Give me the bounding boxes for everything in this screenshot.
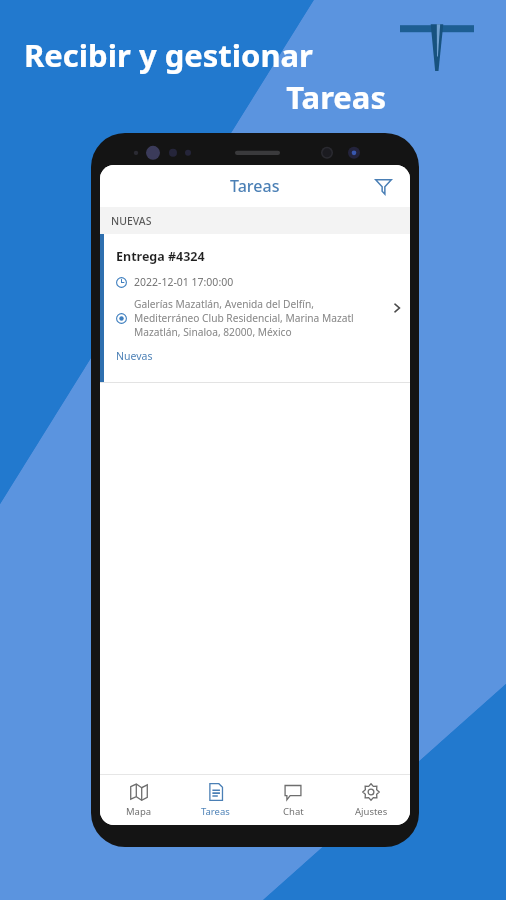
staticText: Chat	[283, 805, 304, 818]
staticText: Nuevas	[116, 349, 153, 363]
button[interactable]: Filtrar	[366, 169, 400, 203]
button[interactable]: Chat	[254, 775, 332, 825]
staticText: Ajustes	[355, 805, 388, 818]
other: Logo	[400, 20, 474, 72]
staticText: Mazatlán, Sinaloa, 82000, México	[134, 325, 292, 339]
button[interactable]: Entrega #4324	[100, 234, 410, 382]
staticText: Mapa	[126, 805, 152, 818]
button[interactable]: Ajustes	[332, 775, 410, 825]
button[interactable]: Tareas	[177, 775, 254, 825]
staticText: 2022-12-01 17:00:00	[134, 275, 234, 289]
staticText: Entrega #4324	[116, 248, 205, 265]
staticText: Tareas	[230, 175, 280, 197]
staticText: Tareas	[201, 805, 230, 818]
button[interactable]: Mapa	[100, 775, 177, 825]
staticText: Galerías Mazatlán, Avenida del Delfín,	[134, 297, 314, 311]
staticText: Recibir y gestionar	[24, 34, 313, 76]
staticText: Tareas	[24, 76, 386, 118]
staticText: Mediterráneo Club Residencial, Marina Ma…	[134, 311, 354, 325]
staticText: NUEVAS	[111, 214, 152, 228]
